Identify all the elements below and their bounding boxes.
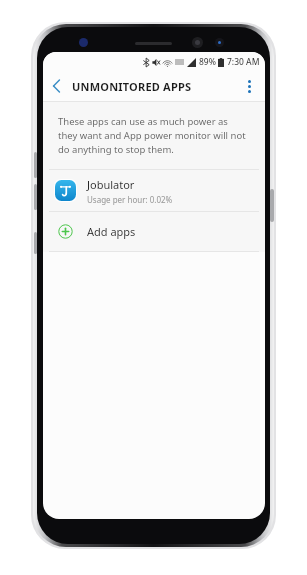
staticText: Add apps bbox=[87, 224, 136, 239]
button[interactable]: Add apps bbox=[43, 212, 265, 251]
button[interactable]: Jobulator bbox=[43, 170, 265, 211]
button[interactable]: More options bbox=[236, 71, 262, 101]
staticText: Jobulator bbox=[87, 177, 135, 192]
staticText: 7:30 AM bbox=[227, 56, 260, 68]
staticText: 89% bbox=[199, 56, 216, 68]
button[interactable]: Navigate up bbox=[43, 71, 69, 101]
staticText: These apps can use as much power as they… bbox=[58, 115, 249, 156]
staticText: Usage per hour: 0.02% bbox=[87, 194, 173, 205]
staticText: UNMONITORED APPS bbox=[72, 79, 192, 94]
